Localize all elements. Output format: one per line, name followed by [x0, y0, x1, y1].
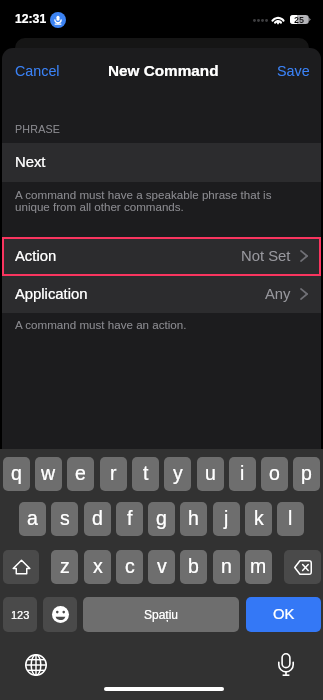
- other: Microphone in use: [50, 12, 66, 28]
- staticText: PHRASE: [15, 123, 61, 135]
- button[interactable]: q: [3, 457, 30, 491]
- button[interactable]: h: [180, 502, 207, 536]
- staticText: 12:31: [15, 12, 47, 26]
- button[interactable]: Numbers: [3, 597, 37, 632]
- staticText: OK: [273, 606, 295, 623]
- button[interactable]: i: [229, 457, 256, 491]
- button[interactable]: y: [164, 457, 191, 491]
- button[interactable]: Action: [2, 237, 321, 276]
- button[interactable]: l: [277, 502, 304, 536]
- staticText: 25: [294, 15, 305, 24]
- staticText: y: [173, 462, 183, 484]
- staticText: Not Set: [241, 248, 291, 265]
- staticText: A command must have an action.: [15, 318, 187, 331]
- staticText: r: [110, 462, 117, 484]
- staticText: p: [301, 462, 312, 484]
- button[interactable]: z: [51, 550, 78, 584]
- staticText: j: [224, 507, 229, 529]
- staticText: z: [60, 555, 70, 577]
- button[interactable]: e: [67, 457, 94, 491]
- staticText: l: [288, 507, 293, 529]
- staticText: Save: [277, 63, 310, 79]
- button[interactable]: Change keyboard language: [24, 653, 48, 677]
- staticText: n: [221, 555, 232, 577]
- staticText: a: [27, 507, 38, 529]
- button[interactable]: Next: [2, 143, 321, 182]
- staticText: 123: [11, 609, 30, 621]
- button[interactable]: Spațiu: [83, 597, 239, 632]
- staticText: q: [11, 462, 22, 484]
- staticText: Any: [265, 286, 291, 303]
- staticText: m: [250, 555, 267, 577]
- staticText: Action: [15, 248, 57, 265]
- staticText: i: [240, 462, 245, 484]
- button[interactable]: s: [51, 502, 78, 536]
- staticText: e: [75, 462, 86, 484]
- button[interactable]: w: [35, 457, 62, 491]
- button[interactable]: n: [213, 550, 240, 584]
- staticText: v: [157, 555, 167, 577]
- button[interactable]: c: [116, 550, 143, 584]
- staticText: c: [125, 555, 135, 577]
- button[interactable]: Emoji: [43, 597, 77, 632]
- button[interactable]: k: [245, 502, 272, 536]
- button[interactable]: g: [148, 502, 175, 536]
- staticText: d: [92, 507, 103, 529]
- button[interactable]: m: [245, 550, 272, 584]
- staticText: u: [205, 462, 216, 484]
- button[interactable]: p: [293, 457, 320, 491]
- staticText: g: [156, 507, 167, 529]
- staticText: Cancel: [15, 63, 60, 79]
- staticText: k: [254, 507, 264, 529]
- staticText: Spațiu: [144, 608, 179, 621]
- staticText: x: [93, 555, 103, 577]
- button[interactable]: d: [84, 502, 111, 536]
- button[interactable]: Shift: [3, 550, 39, 584]
- button[interactable]: b: [180, 550, 207, 584]
- button[interactable]: v: [148, 550, 175, 584]
- button[interactable]: Cancel: [2, 54, 73, 88]
- staticText: h: [188, 507, 199, 529]
- button[interactable]: OK: [246, 597, 321, 632]
- staticText: New Command: [108, 62, 219, 79]
- staticText: Next: [15, 154, 46, 171]
- button[interactable]: o: [261, 457, 288, 491]
- button[interactable]: Backspace: [284, 550, 321, 584]
- button[interactable]: j: [213, 502, 240, 536]
- staticText: s: [60, 507, 70, 529]
- staticText: Application: [15, 286, 88, 303]
- staticText: b: [188, 555, 199, 577]
- staticText: t: [143, 462, 149, 484]
- staticText: A command must have a speakable phrase t…: [15, 188, 272, 214]
- button[interactable]: Dictation: [274, 652, 298, 676]
- button[interactable]: a: [19, 502, 46, 536]
- button[interactable]: Save: [266, 54, 321, 88]
- button[interactable]: u: [197, 457, 224, 491]
- staticText: w: [41, 462, 56, 484]
- button[interactable]: f: [116, 502, 143, 536]
- button[interactable]: Application: [2, 276, 321, 313]
- staticText: f: [127, 507, 133, 529]
- button[interactable]: r: [100, 457, 127, 491]
- button[interactable]: t: [132, 457, 159, 491]
- button[interactable]: x: [84, 550, 111, 584]
- staticText: o: [269, 462, 280, 484]
